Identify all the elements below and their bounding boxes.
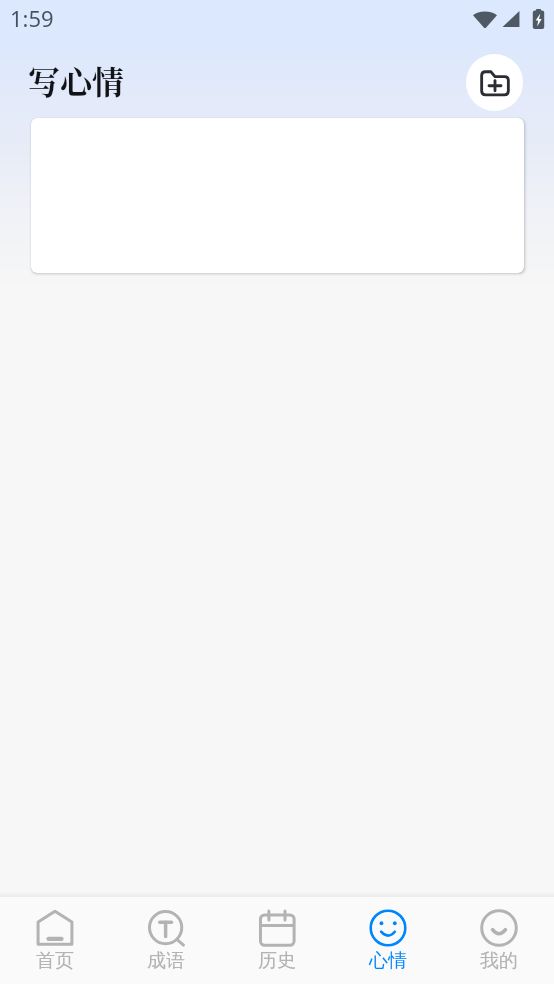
- staticText: 历史: [258, 949, 296, 973]
- staticText: 写心情: [28, 57, 125, 103]
- button[interactable]: 历史: [221, 898, 332, 984]
- button[interactable]: 心情: [332, 898, 443, 984]
- staticText: 首页: [36, 949, 74, 973]
- staticText: 1:59: [10, 3, 54, 33]
- staticText: 我的: [480, 949, 518, 973]
- button[interactable]: New folder: [466, 54, 523, 111]
- button[interactable]: 成语: [110, 898, 221, 984]
- button[interactable]: 我的: [443, 898, 554, 984]
- staticText: 心情: [369, 949, 407, 973]
- staticText: 成语: [147, 949, 185, 973]
- button[interactable]: 首页: [0, 898, 110, 984]
